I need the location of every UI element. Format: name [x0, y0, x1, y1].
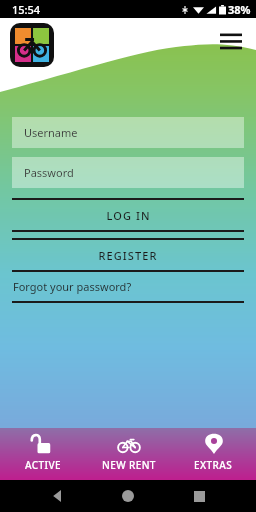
button[interactable]: NEW RENT: [86, 428, 171, 480]
button[interactable]: Recents: [186, 483, 212, 509]
button[interactable]: Back: [45, 483, 71, 509]
button[interactable]: Username: [12, 117, 244, 148]
staticText: Password: [24, 165, 74, 180]
staticText: EXTRAS: [194, 458, 233, 472]
button[interactable]: Forgot your password?: [12, 279, 244, 303]
button[interactable]: EXTRAS: [171, 428, 256, 480]
button[interactable]: App logo: [10, 23, 54, 67]
button[interactable]: Menu: [212, 22, 250, 60]
button[interactable]: Home: [115, 483, 141, 509]
staticText: Username: [24, 125, 78, 140]
staticText: NEW RENT: [102, 458, 156, 472]
staticText: LOG IN: [106, 208, 151, 223]
button[interactable]: Password: [12, 157, 244, 188]
button[interactable]: ACTIVE: [0, 428, 86, 480]
staticText: 15:54: [12, 2, 41, 17]
staticText: 38%: [228, 2, 251, 17]
staticText: REGISTER: [98, 248, 158, 263]
button[interactable]: LOG IN: [12, 200, 244, 230]
staticText: Forgot your password?: [13, 279, 132, 294]
button[interactable]: REGISTER: [12, 240, 244, 270]
staticText: ACTIVE: [25, 458, 61, 472]
